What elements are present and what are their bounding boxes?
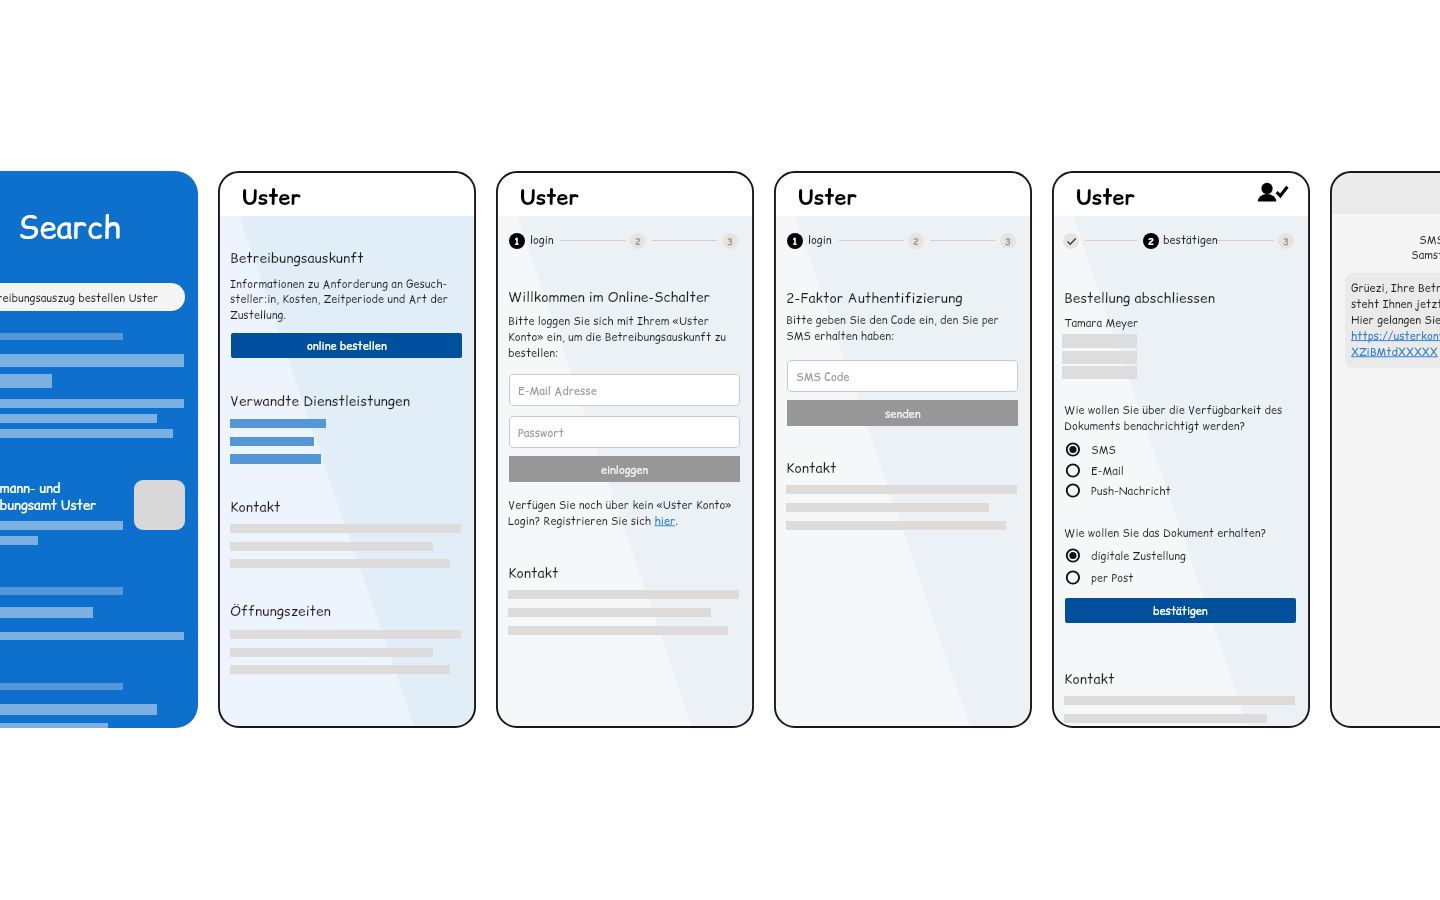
staticText: Bestellung abschliessen [1064, 288, 1215, 307]
staticText: Betreibungs-, Konkursammann- und Gemeind… [0, 479, 97, 514]
staticText: Grüezi, Ihre Betreibungsauskunft steht I… [1351, 280, 1440, 328]
button[interactable]: Betreibungsauszug bestellen Uster [0, 283, 185, 311]
button[interactable]: einloggen [509, 456, 740, 482]
button[interactable]: E-Mail [1062, 460, 1296, 481]
staticText: 2 [913, 235, 919, 248]
staticText: Betreibungsauskunft [230, 248, 364, 267]
staticText: https://usterkonto.ch/dokumente/ XZiBMtd… [1351, 328, 1440, 360]
staticText: Informationen zu Anforderung an Gesuch- … [230, 276, 449, 323]
staticText: 2 [1148, 235, 1154, 248]
staticText: Samstag, 14:32 [1411, 247, 1440, 262]
staticText: per Post [1091, 570, 1134, 585]
staticText: bestätigen [1163, 232, 1218, 247]
staticText: Wie wollen Sie über die Verfügbarkeit de… [1064, 402, 1283, 434]
staticText: SMS Code [796, 369, 850, 384]
button[interactable]: senden [787, 400, 1018, 426]
button[interactable]: E-Mail Adresse [509, 374, 740, 406]
button[interactable]: Push-Nachricht [1062, 480, 1296, 501]
staticText: Wie wollen Sie das Dokument erhalten? [1064, 525, 1267, 540]
staticText: Öffnungszeiten [230, 601, 331, 620]
staticText: login [808, 232, 832, 247]
staticText: Verwandte Dienstleistungen [230, 391, 410, 410]
staticText: senden [885, 406, 921, 421]
staticText: Willkommen im Online-Schalter [508, 287, 711, 306]
staticText: E-Mail Adresse [518, 383, 597, 398]
staticText: online bestellen [307, 338, 387, 353]
button[interactable]: SMS [1062, 439, 1296, 460]
staticText: Kontakt [786, 458, 837, 477]
staticText: Tamara Meyer [1064, 315, 1139, 330]
staticText: 2 [635, 235, 641, 248]
staticText: 3 [1005, 235, 1011, 248]
staticText: Passwort [518, 425, 564, 440]
staticText: Kontakt [230, 497, 281, 516]
button[interactable]: Signed in account [1252, 179, 1292, 208]
staticText: 2-Faktor Authentifizierung [786, 288, 963, 307]
staticText: login [530, 232, 554, 247]
button[interactable]: bestätigen [1065, 598, 1296, 623]
staticText: Uster [798, 182, 857, 212]
button[interactable]: digitale Zustellung [1062, 545, 1296, 566]
staticText: Uster [520, 182, 579, 212]
staticText: Kontakt [1064, 669, 1115, 688]
staticText: 1 [792, 235, 798, 248]
staticText: Verfügen Sie noch über kein «Uster Konto… [508, 497, 732, 529]
staticText: 3 [727, 235, 733, 248]
staticText: bestätigen [1153, 603, 1208, 618]
staticText: SMS [1419, 232, 1440, 247]
button[interactable]: Passwort [509, 416, 740, 448]
button[interactable]: online bestellen [231, 333, 462, 358]
staticText: Betreibungsauszug bestellen Uster [0, 290, 159, 305]
staticText: Uster [1076, 182, 1135, 212]
staticText: Uster [242, 182, 301, 212]
button[interactable]: per Post [1062, 567, 1296, 588]
staticText: einloggen [601, 462, 649, 477]
button[interactable]: SMS Code [787, 360, 1018, 392]
staticText: SMS [1091, 442, 1116, 457]
staticText: 1 [514, 235, 520, 248]
staticText: Push-Nachricht [1091, 483, 1171, 498]
staticText: Kontakt [508, 563, 559, 582]
staticText: Bitte geben Sie den Code ein, den Sie pe… [786, 312, 999, 344]
staticText: Bitte loggen Sie sich mit Ihrem «Uster K… [508, 313, 727, 361]
staticText: Search [18, 205, 122, 248]
staticText: 3 [1283, 235, 1289, 248]
staticText: digitale Zustellung [1091, 548, 1186, 563]
staticText: E-Mail [1091, 463, 1124, 478]
